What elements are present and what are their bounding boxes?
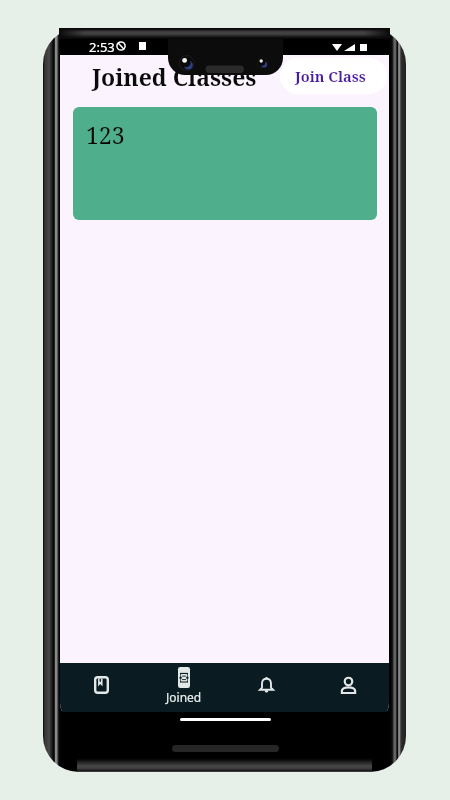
staticText: 123 [86,119,125,150]
button[interactable]: Join Class [280,58,387,94]
button[interactable]: 123 [73,107,377,220]
button[interactable]: Profile [307,663,389,712]
button[interactable]: Joined [143,663,225,712]
staticText: Joined Classes [92,61,257,92]
staticText: Join Class [295,66,366,86]
staticText: 2:53 [89,38,115,56]
staticText: Joined [166,689,202,705]
button[interactable]: Classes [60,663,143,712]
button[interactable]: Notifications [225,663,307,712]
